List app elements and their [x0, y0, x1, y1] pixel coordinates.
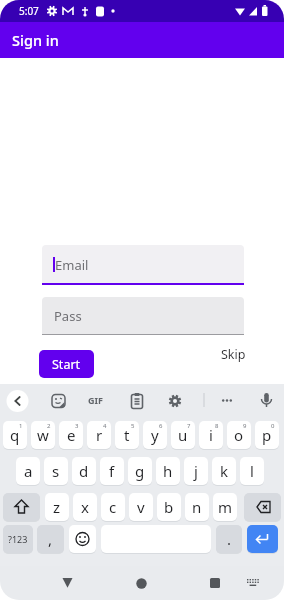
staticText: n	[192, 497, 202, 517]
button[interactable]	[244, 493, 281, 521]
button[interactable]: ,	[37, 525, 64, 553]
button[interactable]	[69, 525, 96, 553]
staticText: h	[163, 461, 173, 481]
staticText: z	[53, 497, 61, 517]
staticText: 5:07	[19, 4, 39, 18]
button[interactable]: a	[16, 457, 40, 485]
button[interactable]: c	[101, 493, 125, 521]
staticText: a	[24, 461, 33, 481]
staticText: e	[67, 425, 76, 445]
button[interactable]: j	[184, 457, 208, 485]
button[interactable]: Pass	[42, 297, 244, 335]
staticText: x	[81, 497, 89, 517]
staticText: p	[262, 425, 272, 445]
button[interactable]: e	[59, 421, 83, 449]
button[interactable]: p	[255, 421, 279, 449]
button[interactable]	[200, 568, 229, 597]
staticText: Pass	[54, 307, 82, 325]
staticText: v	[137, 497, 145, 517]
staticText: 9	[243, 422, 247, 430]
button[interactable]: y	[143, 421, 167, 449]
button[interactable]: z	[45, 493, 69, 521]
button[interactable]: Start	[39, 350, 94, 378]
staticText: m	[218, 497, 233, 517]
staticText: .	[227, 529, 232, 549]
button[interactable]	[3, 493, 40, 521]
staticText: Email	[55, 256, 89, 274]
button[interactable]: r	[87, 421, 111, 449]
staticText: 6	[159, 422, 163, 430]
staticText: 3	[75, 422, 79, 430]
button[interactable]: Email	[42, 245, 244, 285]
button[interactable]: n	[185, 493, 209, 521]
staticText: j	[194, 461, 198, 481]
button[interactable]: m	[213, 493, 237, 521]
staticText: Start	[52, 356, 81, 373]
staticText: 2	[47, 422, 51, 430]
staticText: b	[164, 497, 174, 517]
staticText: 5	[131, 422, 135, 430]
button[interactable]	[0, 384, 30, 416]
button[interactable]: v	[129, 493, 153, 521]
button[interactable]: .	[216, 525, 242, 553]
button[interactable]: k	[212, 457, 236, 485]
staticText: w	[37, 425, 49, 445]
button[interactable]: f	[100, 457, 124, 485]
staticText: ?123	[8, 533, 28, 545]
staticText: c	[109, 497, 117, 517]
staticText: GIF	[88, 394, 103, 406]
staticText: s	[52, 461, 60, 481]
button[interactable]	[240, 569, 266, 597]
staticText: l	[250, 461, 254, 481]
button[interactable]: i	[199, 421, 223, 449]
staticText: y	[151, 425, 159, 445]
staticText: g	[135, 461, 145, 481]
button[interactable]: h	[156, 457, 180, 485]
button[interactable]: ?123	[3, 525, 33, 553]
staticText: f	[109, 461, 115, 481]
button[interactable]: o	[227, 421, 251, 449]
staticText: ,	[48, 529, 53, 549]
button[interactable]: x	[73, 493, 97, 521]
button[interactable]	[247, 525, 278, 553]
staticText: 7	[187, 422, 191, 430]
button[interactable]: s	[44, 457, 68, 485]
button[interactable]: q	[3, 421, 27, 449]
button[interactable]: l	[240, 457, 264, 485]
staticText: t	[124, 425, 130, 445]
staticText: u	[178, 425, 188, 445]
staticText: Skip	[221, 346, 246, 363]
staticText: q	[10, 425, 20, 445]
button[interactable]: b	[157, 493, 181, 521]
button[interactable]: t	[115, 421, 139, 449]
button[interactable]	[53, 568, 82, 597]
button[interactable]: u	[171, 421, 195, 449]
staticText: 8	[215, 422, 219, 430]
staticText: 4	[103, 422, 107, 430]
staticText: 1	[19, 422, 23, 430]
staticText: k	[220, 461, 229, 481]
staticText: Sign in	[12, 30, 59, 50]
staticText: 0	[271, 422, 275, 430]
button[interactable]: Skip	[216, 345, 250, 363]
button[interactable]	[127, 569, 156, 598]
button[interactable]: g	[128, 457, 152, 485]
button[interactable]: w	[31, 421, 55, 449]
staticText: i	[209, 425, 213, 445]
staticText: o	[234, 425, 244, 445]
staticText: r	[96, 425, 103, 445]
staticText: d	[79, 461, 89, 481]
button[interactable]: d	[72, 457, 96, 485]
